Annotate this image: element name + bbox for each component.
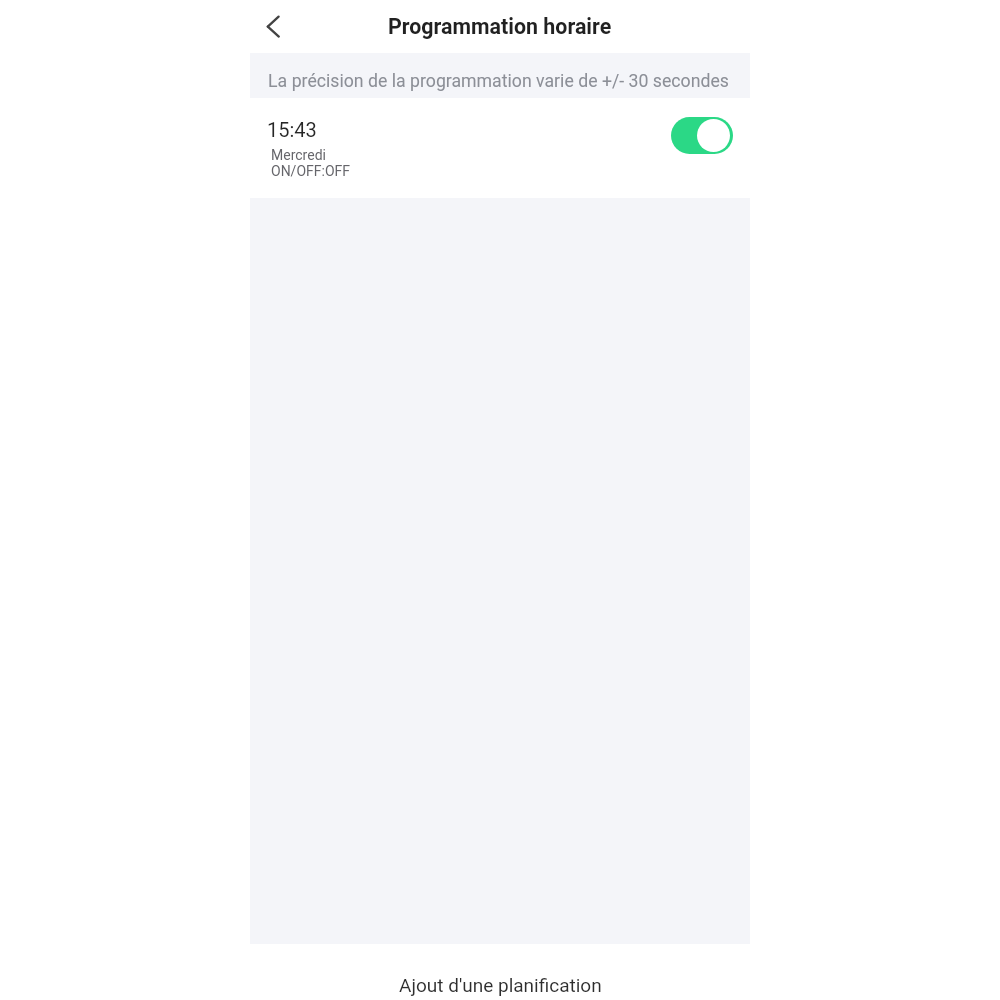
button[interactable]: Retour [250,4,294,50]
staticText: Programmation horaire [388,14,612,39]
staticText: 15:43 [267,118,317,141]
button[interactable]: Activer la programmation [671,117,733,154]
button[interactable]: Ajout d'une planification [250,944,750,1000]
staticText: Mercredi [271,147,326,163]
staticText: ON/OFF:OFF [271,163,351,179]
button[interactable]: 15:43 [250,98,750,198]
staticText: Ajout d'une planification [399,974,602,996]
staticText: La précision de la programmation varie d… [268,71,729,92]
